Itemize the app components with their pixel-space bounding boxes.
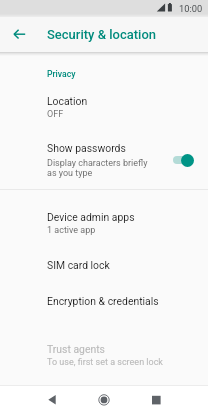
staticText: OFF (47, 109, 64, 120)
staticText: Location (47, 95, 88, 107)
button[interactable]: Encryption & credentials (0, 283, 208, 319)
button[interactable]: Recent apps (140, 386, 172, 416)
staticText: 1 active app (47, 225, 96, 236)
staticText: Encryption & credentials (47, 295, 159, 307)
button[interactable]: Trust agents (0, 332, 208, 375)
staticText: Security & location (47, 27, 156, 42)
staticText: Privacy (47, 69, 76, 79)
button[interactable]: Home (88, 386, 120, 416)
button[interactable]: SIM card lock (0, 247, 208, 283)
button[interactable]: Back (36, 386, 68, 416)
button[interactable]: Back (2, 17, 37, 52)
staticText: SIM card lock (47, 259, 110, 271)
staticText: Device admin apps (47, 211, 135, 223)
staticText: as you type (47, 168, 93, 179)
staticText: 10:00 (179, 3, 203, 14)
staticText: Display characters briefly (47, 158, 148, 169)
staticText: To use, first set a screen lock (47, 357, 163, 368)
button[interactable]: Location (0, 85, 208, 123)
staticText: Show passwords (47, 142, 126, 154)
button[interactable]: Show passwords (0, 131, 208, 188)
staticText: Trust agents (47, 343, 105, 355)
button[interactable]: Device admin apps (0, 201, 208, 239)
